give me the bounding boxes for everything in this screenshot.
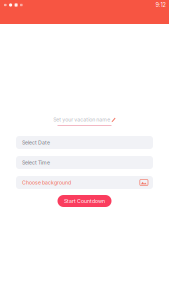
- button[interactable]: Select Time: [16, 156, 153, 169]
- staticText: 9:12: [155, 2, 165, 8]
- staticText: Choose background: [22, 179, 71, 186]
- staticText: Start Countdown: [64, 198, 105, 204]
- staticText: Set your vacation name: [53, 116, 110, 123]
- button[interactable]: Choose background: [16, 176, 153, 189]
- button[interactable]: Select Date: [16, 136, 153, 149]
- staticText: Select Date: [22, 139, 50, 146]
- staticText: Select Time: [22, 159, 50, 166]
- button[interactable]: Set your vacation name: [39, 116, 129, 126]
- button[interactable]: Start Countdown: [57, 195, 111, 207]
